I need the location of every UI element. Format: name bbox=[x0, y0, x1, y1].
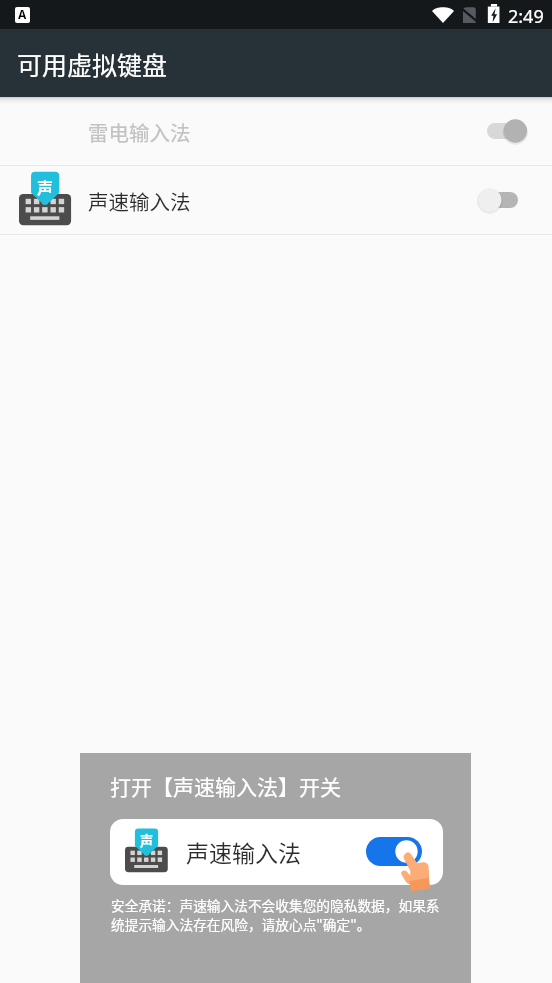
button[interactable]: 雷电输入法 bbox=[0, 97, 552, 165]
staticText: 可用虚拟键盘 bbox=[17, 46, 168, 82]
staticText: 安全承诺：声速输入法不会收集您的隐私数据，如果系统提示输入法存在风险，请放心点"… bbox=[111, 895, 451, 934]
staticText: 雷电输入法 bbox=[88, 117, 191, 147]
staticText: 打开【声速输入法】开关 bbox=[110, 771, 341, 801]
button[interactable]: Toggle bbox=[484, 118, 530, 144]
staticText: 声 bbox=[140, 831, 154, 850]
staticText: 声速输入法 bbox=[186, 835, 301, 868]
staticText: 2:49 bbox=[508, 4, 544, 29]
button[interactable]: 声 bbox=[0, 166, 552, 234]
other: Tap here bbox=[401, 851, 435, 893]
staticText: A bbox=[18, 7, 27, 22]
staticText: 声 bbox=[37, 175, 53, 198]
staticText: 声速输入法 bbox=[88, 186, 191, 216]
button[interactable]: Enable bbox=[366, 837, 422, 866]
button[interactable]: Toggle bbox=[475, 187, 521, 213]
button[interactable]: 声 bbox=[110, 819, 443, 885]
